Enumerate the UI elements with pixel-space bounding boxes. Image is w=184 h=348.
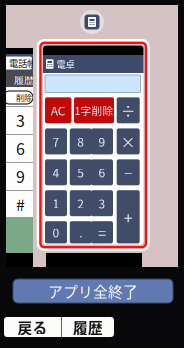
staticText: = xyxy=(98,222,106,243)
staticText: . xyxy=(79,224,82,241)
staticText: 9 xyxy=(16,164,25,188)
button[interactable]: 履歴 xyxy=(62,317,114,337)
staticText: 9 xyxy=(98,133,105,150)
staticText: 電話帳 xyxy=(9,56,36,70)
button[interactable]: 3 xyxy=(91,190,113,216)
staticText: 3 xyxy=(16,108,25,132)
staticText: 3 xyxy=(98,194,105,212)
staticText: アプリ全終了 xyxy=(48,280,138,302)
staticText: 戻る xyxy=(17,316,47,338)
staticText: 7 xyxy=(52,133,59,150)
staticText: + xyxy=(124,205,133,228)
button[interactable]: 0 xyxy=(45,221,67,243)
staticText: 5 xyxy=(77,164,84,181)
button[interactable]: 1字削除 xyxy=(74,97,114,123)
staticText: 1 xyxy=(52,194,59,212)
button[interactable]: 6 xyxy=(91,159,113,185)
staticText: 8 xyxy=(77,133,84,150)
staticText: 履歴 xyxy=(73,316,103,338)
staticText: AC xyxy=(51,102,66,119)
button[interactable]: 戻る xyxy=(4,317,61,337)
button[interactable]: = xyxy=(91,221,113,243)
staticText: 履歴 xyxy=(14,72,34,87)
button[interactable]: AC xyxy=(45,97,71,123)
staticText: 1字削除 xyxy=(74,103,113,118)
staticText: ÷ xyxy=(121,100,136,121)
staticText: 4 xyxy=(52,164,59,181)
staticText: 6 xyxy=(98,164,105,181)
staticText: 0 xyxy=(52,224,59,241)
button[interactable]: ÷ xyxy=(117,97,140,123)
button[interactable]: 2 xyxy=(70,190,92,216)
staticText: 削除 xyxy=(16,92,32,103)
button[interactable]: 7 xyxy=(45,128,67,154)
button[interactable]: 9 xyxy=(91,128,113,154)
button[interactable]: アプリ全終了 xyxy=(13,279,173,303)
staticText: 電卓 xyxy=(56,57,74,71)
button[interactable]: 1 xyxy=(45,190,67,216)
button[interactable]: + xyxy=(117,190,140,243)
button[interactable]: 8 xyxy=(70,128,92,154)
staticText: 6 xyxy=(16,136,25,160)
button[interactable]: . xyxy=(70,221,92,243)
button[interactable]: − xyxy=(117,159,140,185)
button[interactable]: × xyxy=(117,128,140,154)
staticText: − xyxy=(124,162,132,183)
button[interactable]: 5 xyxy=(70,159,92,185)
staticText: 2 xyxy=(77,194,84,212)
staticText: × xyxy=(121,131,136,152)
button[interactable]: 4 xyxy=(45,159,67,185)
staticText: # xyxy=(16,192,25,216)
